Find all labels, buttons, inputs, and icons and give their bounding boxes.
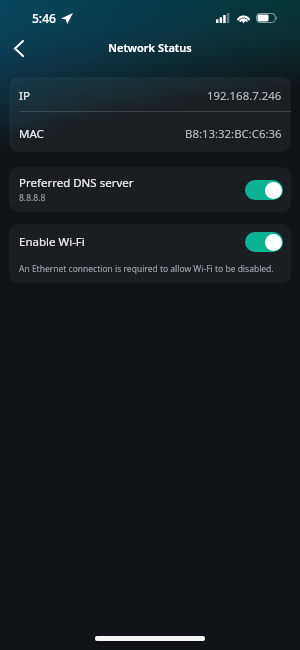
button[interactable]: MAC	[9, 112, 291, 152]
staticText: B8:13:32:BC:C6:36	[185, 126, 282, 142]
staticText: MAC	[19, 126, 44, 142]
button[interactable]: Back	[0, 33, 38, 66]
staticText: Preferred DNS server	[19, 175, 134, 191]
button[interactable]: Toggle	[245, 180, 283, 200]
button[interactable]: Enable Wi-Fi	[19, 224, 283, 260]
staticText: An Ethernet connection is required to al…	[19, 263, 274, 275]
staticText: Enable Wi-Fi	[19, 234, 245, 250]
button[interactable]: Toggle	[245, 232, 283, 252]
button[interactable]: IP	[9, 77, 291, 111]
button[interactable]: Preferred DNS server	[9, 167, 291, 212]
staticText: 8.8.8.8	[19, 192, 46, 204]
staticText: Network Status	[108, 40, 192, 55]
staticText: 192.168.7.246	[207, 88, 282, 104]
staticText: 5:46	[32, 10, 56, 26]
staticText: IP	[19, 88, 30, 104]
